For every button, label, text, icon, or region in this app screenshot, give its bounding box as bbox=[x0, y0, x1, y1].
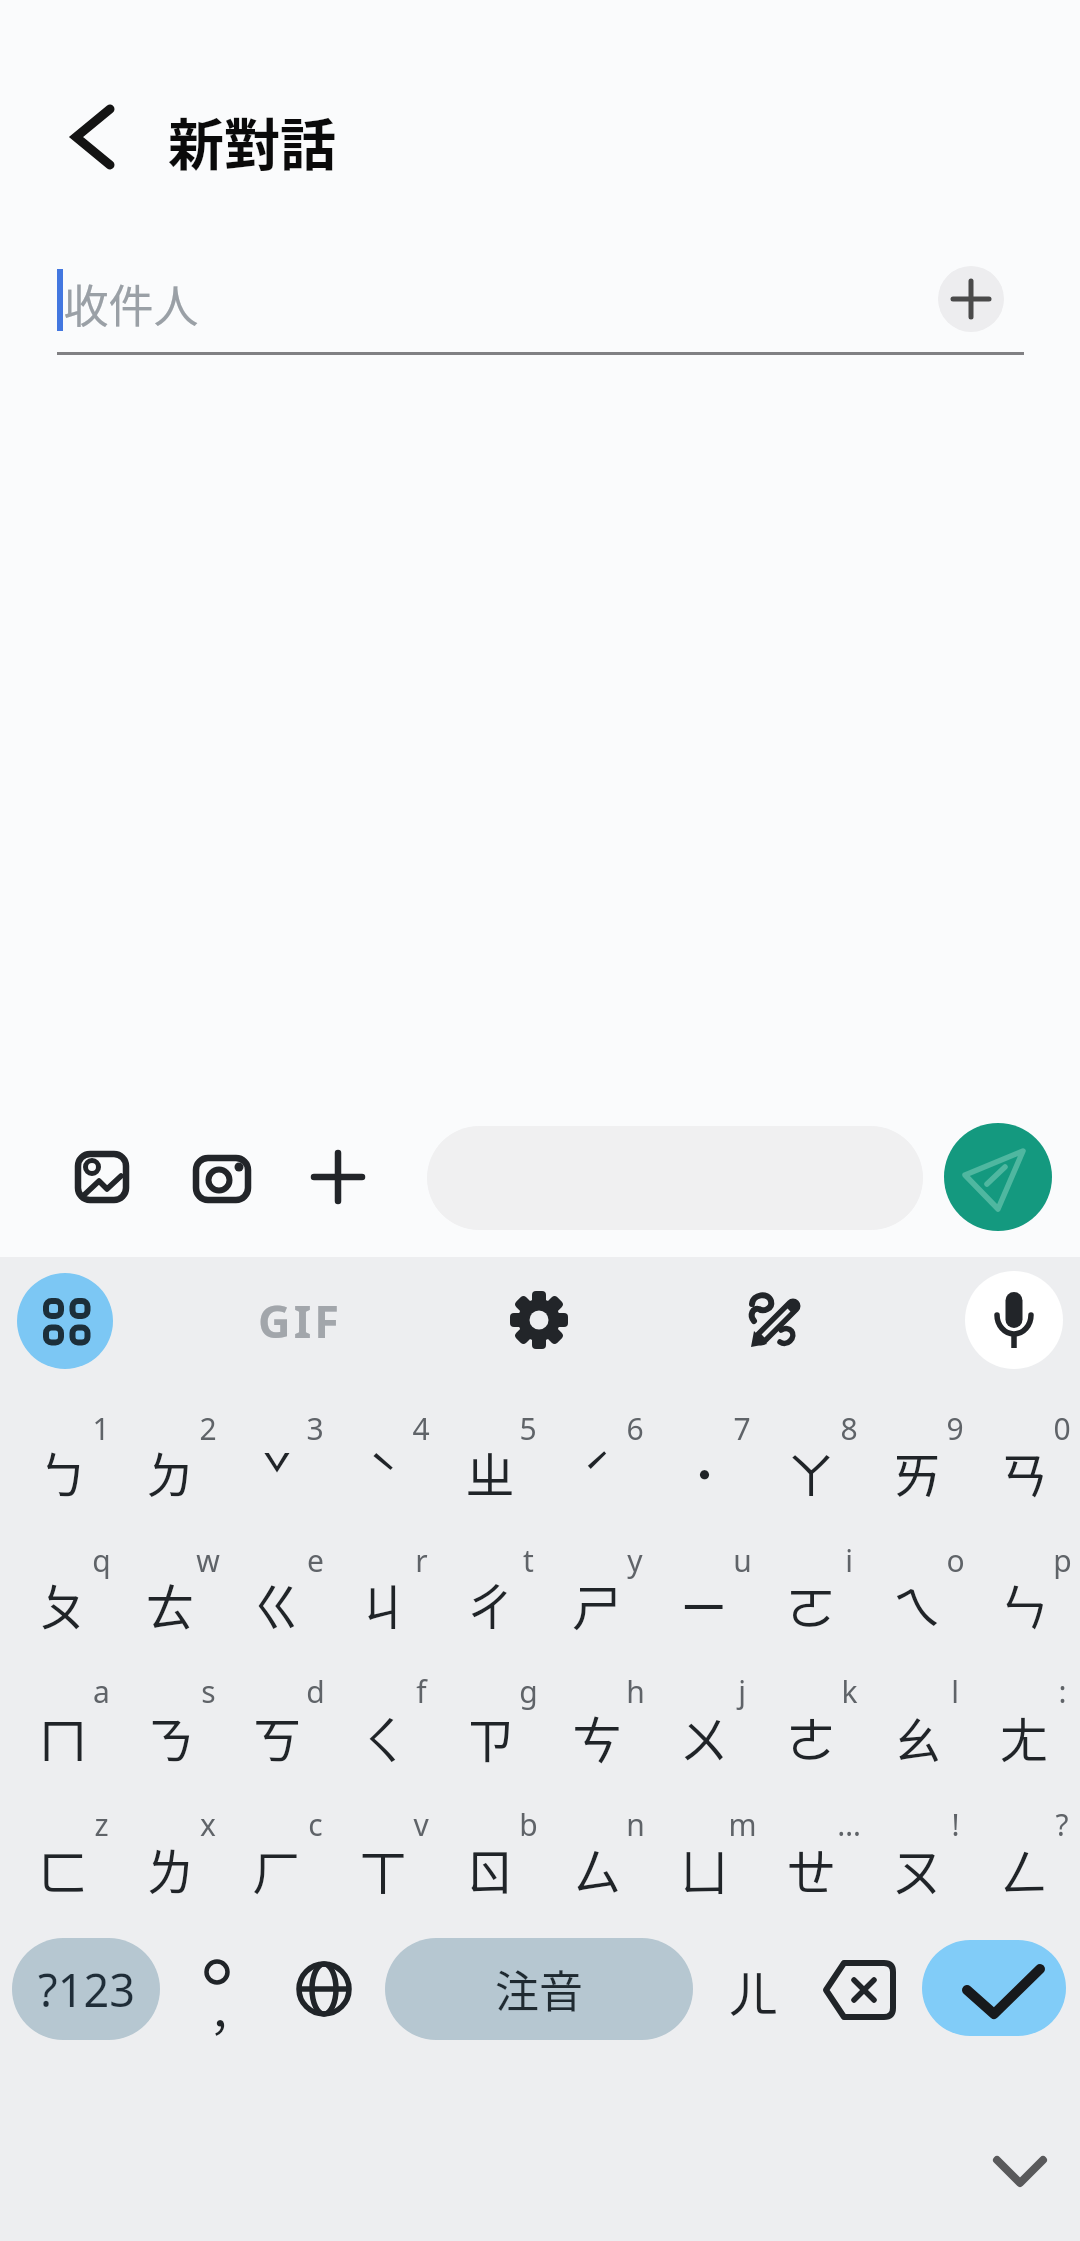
button[interactable] bbox=[306, 1145, 370, 1209]
button[interactable] bbox=[117, 1544, 223, 1664]
button[interactable] bbox=[651, 1809, 757, 1929]
button[interactable] bbox=[971, 1412, 1077, 1532]
button[interactable] bbox=[758, 1677, 864, 1797]
staticText: : bbox=[1058, 1671, 1067, 1712]
staticText: 9 bbox=[946, 1408, 964, 1449]
button[interactable] bbox=[864, 1809, 970, 1929]
staticText: ㄝ bbox=[786, 1833, 836, 1905]
button[interactable] bbox=[278, 1938, 368, 2040]
button[interactable] bbox=[494, 1280, 584, 1360]
button[interactable] bbox=[70, 1145, 134, 1209]
staticText: ㄔ bbox=[465, 1568, 515, 1640]
button[interactable] bbox=[864, 1412, 970, 1532]
button[interactable] bbox=[544, 1677, 650, 1797]
button[interactable] bbox=[224, 1544, 330, 1664]
staticText: g bbox=[519, 1671, 538, 1712]
staticText: 0 bbox=[1053, 1408, 1071, 1449]
button[interactable] bbox=[544, 1809, 650, 1929]
button[interactable] bbox=[117, 1412, 223, 1532]
button[interactable] bbox=[190, 1145, 254, 1209]
staticText: ㄍ bbox=[252, 1568, 302, 1640]
button[interactable] bbox=[224, 1677, 330, 1797]
button[interactable] bbox=[17, 1273, 113, 1369]
button[interactable] bbox=[732, 1280, 822, 1360]
staticText: ?123 bbox=[38, 1959, 135, 2020]
staticText: ! bbox=[951, 1804, 960, 1845]
button[interactable] bbox=[544, 1412, 650, 1532]
staticText: ˙ bbox=[692, 1436, 717, 1508]
staticText: ㄛ bbox=[786, 1568, 836, 1640]
button[interactable] bbox=[708, 1938, 798, 2040]
staticText: 3 bbox=[306, 1408, 324, 1449]
button[interactable] bbox=[437, 1544, 543, 1664]
button[interactable] bbox=[10, 1677, 116, 1797]
button[interactable] bbox=[544, 1544, 650, 1664]
staticText: ㄞ bbox=[892, 1436, 942, 1508]
button[interactable] bbox=[330, 1544, 436, 1664]
button[interactable] bbox=[922, 1940, 1066, 2036]
staticText: GIF bbox=[258, 1290, 342, 1351]
button[interactable] bbox=[864, 1677, 970, 1797]
button[interactable] bbox=[758, 1809, 864, 1929]
staticText: k bbox=[841, 1671, 858, 1712]
button[interactable] bbox=[255, 1280, 345, 1360]
staticText: ㄨ bbox=[679, 1701, 729, 1773]
button[interactable] bbox=[330, 1412, 436, 1532]
button[interactable] bbox=[971, 1809, 1077, 1929]
button[interactable] bbox=[117, 1809, 223, 1929]
button[interactable] bbox=[651, 1412, 757, 1532]
staticText: ㄠ bbox=[892, 1701, 942, 1773]
staticText: 7 bbox=[733, 1408, 751, 1449]
staticText: q bbox=[92, 1540, 111, 1581]
staticText: a bbox=[93, 1671, 110, 1712]
staticText: ˇ bbox=[262, 1436, 292, 1508]
button[interactable] bbox=[10, 1544, 116, 1664]
staticText: ㄐ bbox=[358, 1568, 408, 1640]
staticText: ㄧ bbox=[679, 1568, 729, 1640]
staticText: e bbox=[307, 1540, 324, 1581]
button[interactable] bbox=[758, 1412, 864, 1532]
button[interactable] bbox=[10, 1412, 116, 1532]
staticText: ㄓ bbox=[465, 1436, 515, 1508]
button[interactable] bbox=[813, 1938, 903, 2040]
button[interactable] bbox=[385, 1938, 693, 2040]
button[interactable] bbox=[437, 1809, 543, 1929]
button[interactable] bbox=[10, 1809, 116, 1929]
button[interactable] bbox=[117, 1677, 223, 1797]
button[interactable] bbox=[437, 1412, 543, 1532]
staticText: m bbox=[728, 1804, 757, 1845]
button[interactable] bbox=[864, 1544, 970, 1664]
button[interactable] bbox=[60, 105, 130, 175]
staticText: ㄌ bbox=[145, 1833, 195, 1905]
button[interactable] bbox=[330, 1809, 436, 1929]
button[interactable] bbox=[330, 1677, 436, 1797]
button[interactable] bbox=[224, 1809, 330, 1929]
button[interactable] bbox=[437, 1677, 543, 1797]
staticText: ㄕ bbox=[572, 1568, 622, 1640]
staticText: ㄣ bbox=[999, 1568, 1049, 1640]
button[interactable] bbox=[965, 1271, 1063, 1369]
staticText: y bbox=[627, 1540, 643, 1581]
staticText: ㄢ bbox=[999, 1436, 1049, 1508]
staticText: ㄉ bbox=[145, 1436, 195, 1508]
button[interactable] bbox=[175, 1938, 265, 2040]
button[interactable] bbox=[12, 1938, 160, 2040]
staticText: t bbox=[523, 1540, 534, 1581]
staticText: z bbox=[94, 1804, 109, 1845]
staticText: ㄦ bbox=[728, 1955, 778, 2027]
staticText: i bbox=[845, 1540, 853, 1581]
button[interactable] bbox=[944, 1123, 1052, 1231]
button[interactable] bbox=[651, 1677, 757, 1797]
button[interactable] bbox=[938, 266, 1004, 332]
button[interactable] bbox=[971, 1677, 1077, 1797]
staticText: ㄙ bbox=[572, 1833, 622, 1905]
staticText: o bbox=[946, 1540, 965, 1581]
button[interactable] bbox=[224, 1412, 330, 1532]
button[interactable] bbox=[758, 1544, 864, 1664]
staticText: l bbox=[951, 1671, 959, 1712]
button[interactable] bbox=[971, 1544, 1077, 1664]
button[interactable] bbox=[651, 1544, 757, 1664]
button[interactable] bbox=[985, 2140, 1055, 2204]
staticText: ㄋ bbox=[145, 1701, 195, 1773]
